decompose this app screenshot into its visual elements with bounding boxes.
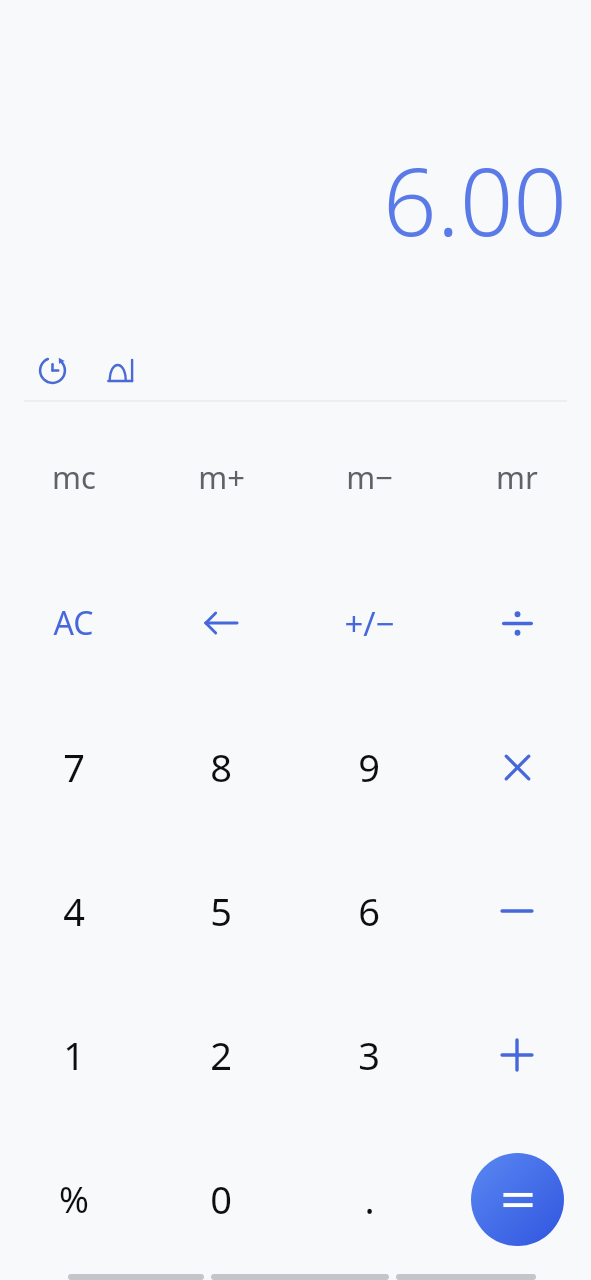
staticText: +/− xyxy=(344,601,395,646)
staticText: 0 xyxy=(210,1173,232,1225)
staticText: m− xyxy=(346,456,393,498)
staticText: 4 xyxy=(63,885,85,937)
button[interactable]: 5 xyxy=(147,839,295,983)
staticText: 7 xyxy=(63,741,85,793)
staticText: AC xyxy=(53,601,94,645)
button[interactable]: Backspace xyxy=(147,551,295,695)
button[interactable]: 6 xyxy=(295,839,443,983)
button[interactable]: . xyxy=(295,1127,443,1271)
staticText: 5 xyxy=(210,885,232,937)
button[interactable]: 8 xyxy=(147,695,295,839)
staticText: 6.00 xyxy=(383,136,567,264)
button[interactable]: +/− xyxy=(295,551,443,695)
staticText: 2 xyxy=(210,1029,232,1081)
staticText: 3 xyxy=(358,1029,380,1081)
staticText: 9 xyxy=(358,741,380,793)
button[interactable]: m− xyxy=(295,402,443,551)
staticText: . xyxy=(364,1173,375,1225)
button[interactable]: 0 xyxy=(147,1127,295,1271)
button[interactable]: mr xyxy=(443,402,591,551)
staticText: 8 xyxy=(210,741,232,793)
staticText: 6 xyxy=(358,885,380,937)
button[interactable]: Divide xyxy=(443,551,591,695)
button[interactable]: Multiply xyxy=(443,695,591,839)
staticText: mc xyxy=(52,456,96,498)
button[interactable]: 4 xyxy=(0,839,147,983)
button[interactable]: 2 xyxy=(147,983,295,1127)
button[interactable]: 9 xyxy=(295,695,443,839)
button[interactable]: Subtract xyxy=(443,839,591,983)
button[interactable]: Graph xyxy=(94,344,146,396)
staticText: 1 xyxy=(63,1029,85,1081)
button[interactable]: AC xyxy=(0,551,147,695)
button[interactable]: m+ xyxy=(147,402,295,551)
button[interactable]: 3 xyxy=(295,983,443,1127)
staticText: % xyxy=(59,1175,89,1224)
button[interactable]: Equals xyxy=(471,1153,564,1246)
button[interactable]: History xyxy=(26,344,78,396)
staticText: m+ xyxy=(198,456,245,498)
button[interactable]: % xyxy=(0,1127,147,1271)
button[interactable]: 1 xyxy=(0,983,147,1127)
staticText: mr xyxy=(496,456,538,498)
button[interactable]: mc xyxy=(0,402,147,551)
button[interactable]: Add xyxy=(443,983,591,1127)
button[interactable]: 7 xyxy=(0,695,147,839)
